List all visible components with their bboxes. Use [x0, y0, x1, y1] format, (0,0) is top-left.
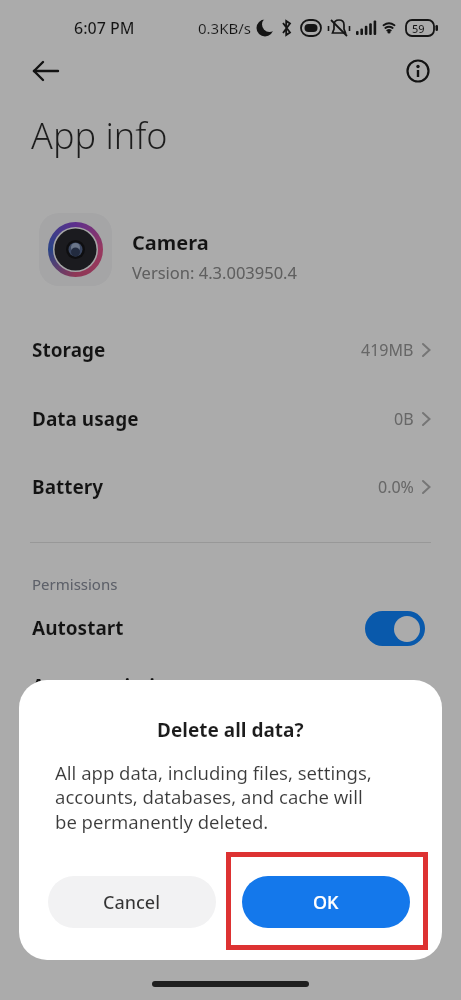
- staticText: Cancel: [103, 890, 161, 915]
- staticText: Delete all data?: [157, 717, 304, 743]
- button[interactable]: [365, 611, 425, 646]
- staticText: Version: 4.3.003950.4: [132, 261, 297, 283]
- staticText: All app data, including files, settings,…: [55, 760, 372, 835]
- staticText: App permissions: [32, 673, 189, 699]
- staticText: Autostart: [32, 615, 124, 641]
- staticText: 59: [412, 21, 425, 36]
- button[interactable]: Data usage: [0, 391, 461, 447]
- staticText: 0.3KB/s: [198, 18, 251, 38]
- staticText: Camera: [132, 229, 209, 256]
- button[interactable]: Cancel: [48, 876, 216, 928]
- button[interactable]: [26, 53, 66, 89]
- staticText: 6:07 PM: [74, 17, 135, 39]
- button[interactable]: [398, 51, 438, 91]
- staticText: Data usage: [32, 406, 139, 432]
- staticText: 419MB: [361, 339, 414, 361]
- button[interactable]: OK: [242, 876, 410, 928]
- staticText: Storage: [32, 337, 106, 363]
- button[interactable]: Autostart: [0, 600, 461, 656]
- staticText: App info: [31, 111, 168, 160]
- button[interactable]: Battery: [0, 459, 461, 515]
- button[interactable]: Storage: [0, 322, 461, 378]
- staticText: OK: [313, 890, 339, 915]
- staticText: 0.0%: [378, 476, 414, 498]
- staticText: Permissions: [32, 574, 118, 594]
- staticText: Battery: [32, 474, 104, 500]
- staticText: 0B: [394, 408, 414, 430]
